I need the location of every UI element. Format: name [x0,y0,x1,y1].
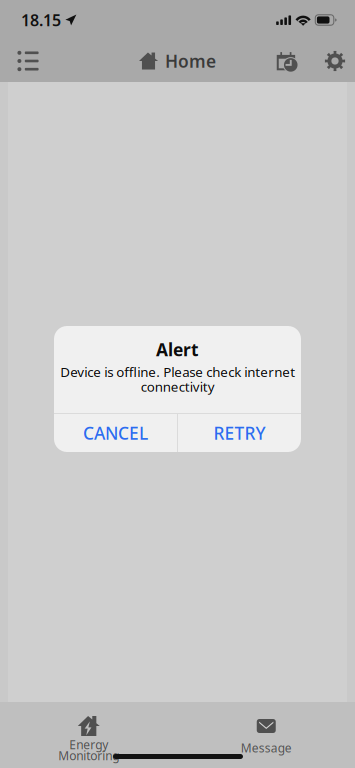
button[interactable]: Schedule [271,45,303,77]
staticText: Device is offline. Please check internet… [60,363,295,395]
button[interactable]: CANCEL [54,414,177,452]
staticText: RETRY [213,421,265,444]
staticText: Message [241,740,292,756]
staticText: Home [165,49,216,72]
button[interactable]: Settings [319,45,351,77]
button[interactable]: Message [177,716,355,768]
staticText: 18.15 [21,9,61,31]
button[interactable]: Menu [12,45,44,77]
staticText: Energy [69,736,108,752]
button[interactable]: RETRY [178,414,301,452]
staticText: Monitoring [58,747,119,763]
staticText: CANCEL [83,421,148,444]
button[interactable]: Energy [0,716,177,768]
staticText: Alert [156,338,199,361]
